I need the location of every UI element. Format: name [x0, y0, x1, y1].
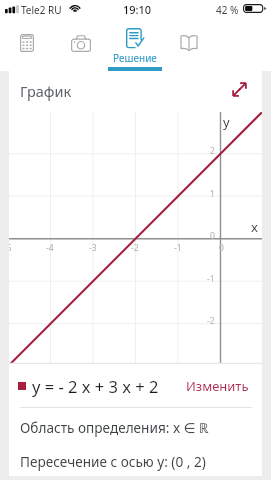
staticText: 2 [210, 145, 215, 157]
staticText: Область определения: x ∈ ℝ [20, 418, 209, 437]
button[interactable]: Решение [108, 22, 162, 71]
staticText: Изменить [186, 377, 249, 395]
button[interactable]: Область определения: x ∈ ℝ [9, 408, 262, 442]
staticText: График [20, 81, 72, 101]
button[interactable]: Развернуть график [226, 76, 252, 102]
staticText: -4 [46, 242, 54, 254]
staticText: 0 [219, 242, 224, 254]
staticText: Решение [113, 51, 157, 65]
staticText: -5 [9, 242, 12, 254]
staticText: y [223, 113, 230, 131]
staticText: -1 [207, 273, 215, 285]
staticText: 19:10 [123, 2, 152, 17]
staticText: 0 [210, 230, 215, 242]
staticText: y = - 2 x + 3 x + 2 [32, 375, 159, 397]
button[interactable]: Пересечение с осью y: (0 , 2) [9, 442, 262, 476]
staticText: x [251, 218, 258, 236]
staticText: -1 [174, 242, 182, 254]
staticText: 1 [210, 188, 215, 200]
button[interactable]: Изменить [184, 372, 251, 400]
staticText: -2 [131, 242, 139, 254]
button[interactable]: Камера [54, 22, 108, 71]
staticText: Tele2 RU [21, 3, 62, 17]
button[interactable]: Книга [162, 22, 216, 71]
staticText: -2 [207, 315, 215, 327]
button[interactable]: Калькулятор [0, 22, 54, 71]
staticText: -3 [89, 242, 97, 254]
staticText: 42 % [216, 3, 239, 17]
staticText: Пересечение с осью y: (0 , 2) [20, 452, 206, 471]
